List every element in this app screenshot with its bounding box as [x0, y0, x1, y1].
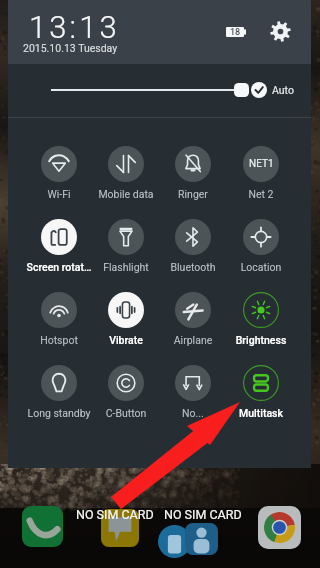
- button[interactable]: Long standby: [26, 365, 92, 419]
- button[interactable]: Messages: [101, 509, 139, 547]
- staticText: No...: [160, 407, 226, 419]
- button[interactable]: Brightness: [228, 292, 294, 346]
- staticText: Auto: [272, 84, 294, 96]
- staticText: NET1: [249, 158, 274, 170]
- button[interactable]: Wi-Fi: [26, 146, 92, 200]
- button[interactable]: C-Button: [93, 365, 159, 419]
- staticText: Long standby: [26, 407, 92, 419]
- button[interactable]: Contacts: [185, 523, 218, 555]
- staticText: Mobile data: [93, 188, 159, 200]
- button[interactable]: Vibrate: [93, 292, 159, 346]
- staticText: NO SIM CARD: [76, 507, 154, 522]
- button[interactable]: Chrome: [258, 506, 301, 549]
- button[interactable]: Location: [228, 219, 294, 273]
- button[interactable]: Flashlight: [93, 219, 159, 273]
- button[interactable]: Ringer: [160, 146, 226, 200]
- staticText: Wi-Fi: [26, 188, 92, 200]
- button[interactable]: No...: [160, 365, 226, 419]
- staticText: Location: [228, 261, 294, 273]
- button[interactable]: Brightness slider: [234, 83, 249, 97]
- staticText: Ringer: [160, 188, 226, 200]
- button[interactable]: Auto brightness: [251, 82, 267, 98]
- button[interactable]: Airplane: [160, 292, 226, 346]
- button[interactable]: Screen rotat...: [26, 219, 92, 273]
- button[interactable]: Mobile data: [93, 146, 159, 200]
- staticText: NO SIM CARD: [164, 507, 242, 522]
- staticText: Airplane: [160, 334, 226, 346]
- button[interactable]: NET1: [228, 146, 294, 200]
- staticText: Flashlight: [93, 261, 159, 273]
- staticText: Brightness: [228, 334, 294, 346]
- button[interactable]: Settings: [270, 21, 291, 42]
- button[interactable]: Calculator: [158, 525, 191, 558]
- staticText: Hotspot: [26, 334, 92, 346]
- staticText: Bluetooth: [160, 261, 226, 273]
- staticText: C-Button: [93, 407, 159, 419]
- button[interactable]: Bluetooth: [160, 219, 226, 273]
- staticText: 18: [230, 27, 241, 37]
- button[interactable]: Phone: [22, 506, 63, 547]
- staticText: Net 2: [228, 188, 294, 200]
- button[interactable]: Multitask: [228, 365, 294, 419]
- staticText: Multitask: [228, 407, 294, 419]
- staticText: 13:13: [29, 9, 120, 45]
- staticText: Vibrate: [93, 334, 159, 346]
- staticText: 2015.10.13 Tuesday: [23, 42, 118, 54]
- button[interactable]: Hotspot: [26, 292, 92, 346]
- staticText: Screen rotat...: [26, 261, 92, 273]
